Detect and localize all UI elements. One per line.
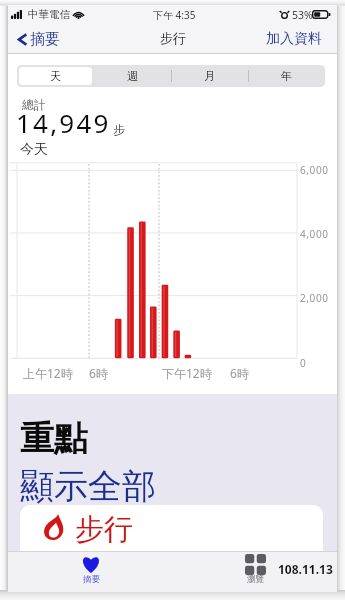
button[interactable]: 摘要	[14, 26, 72, 52]
button[interactable]: 週	[94, 65, 171, 87]
staticText: 加入資料	[266, 30, 322, 48]
staticText: 顯示全部	[20, 465, 156, 508]
staticText: 2,000	[300, 291, 329, 305]
staticText: 0	[300, 356, 307, 370]
button[interactable]: 年	[248, 65, 325, 87]
button[interactable]: 加入資料	[264, 27, 324, 51]
button[interactable]: 天	[19, 67, 92, 85]
staticText: 上午12時	[23, 365, 73, 381]
staticText: 6時	[230, 365, 249, 381]
staticText: 瀏覽	[247, 574, 264, 585]
staticText: 6時	[89, 365, 108, 381]
staticText: 年	[281, 69, 292, 83]
staticText: 下午 4:35	[153, 8, 196, 22]
staticText: 步	[113, 122, 125, 137]
button[interactable]: 月	[171, 65, 248, 87]
button[interactable]: 步行	[20, 505, 323, 551]
button[interactable]: 顯示全部	[20, 465, 156, 508]
staticText: 天	[50, 69, 61, 83]
staticText: 步行	[160, 30, 186, 46]
staticText: 中華電信	[28, 8, 70, 21]
staticText: 摘要	[83, 574, 100, 585]
staticText: 總計	[22, 97, 46, 112]
button[interactable]: 瀏覽	[226, 551, 284, 592]
staticText: 今天	[20, 141, 48, 159]
button[interactable]: 摘要	[62, 551, 120, 592]
staticText: 重點	[20, 417, 88, 460]
staticText: 下午12時	[162, 365, 212, 381]
staticText: 14,949	[16, 105, 111, 140]
staticText: 摘要	[30, 30, 60, 49]
staticText: 週	[127, 69, 138, 83]
staticText: 108.11.13	[278, 561, 333, 577]
staticText: 53%	[292, 8, 313, 22]
staticText: 6,000	[300, 163, 329, 177]
staticText: 4,000	[300, 227, 329, 241]
staticText: 步行	[75, 511, 133, 548]
staticText: 月	[204, 69, 215, 83]
